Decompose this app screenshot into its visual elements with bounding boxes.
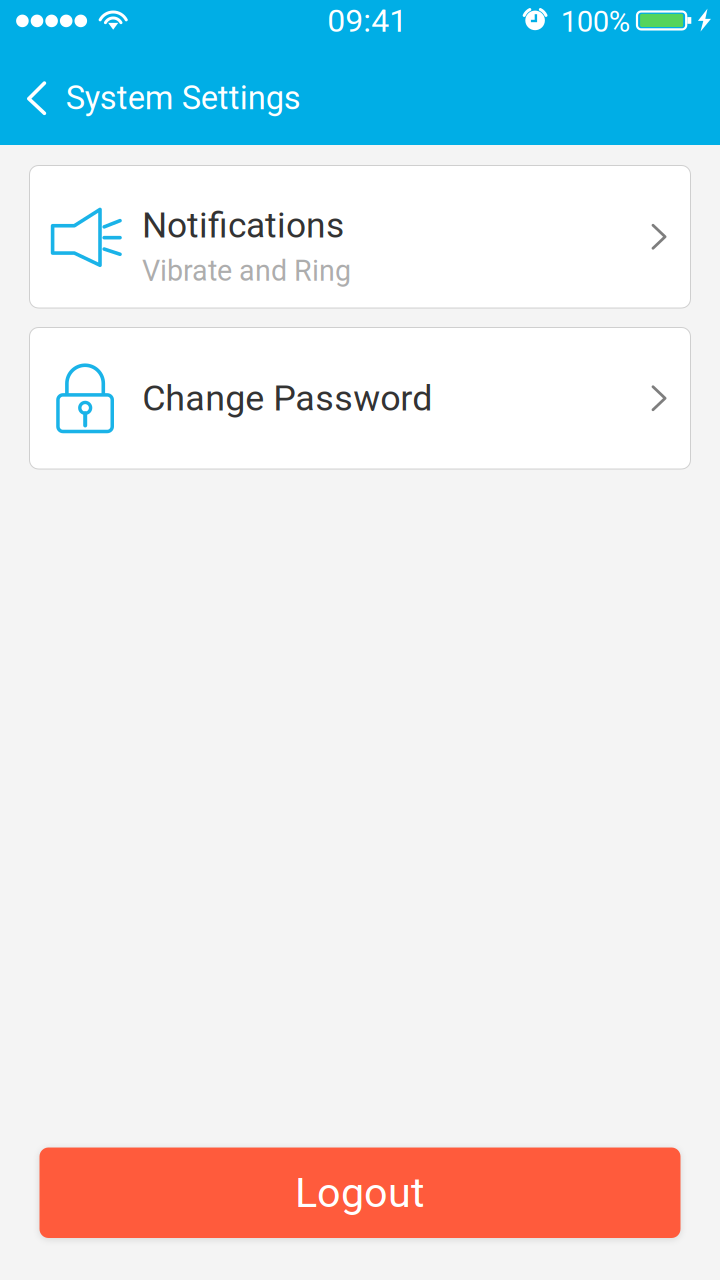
staticText: Notifications xyxy=(142,205,344,246)
staticText: System Settings xyxy=(66,79,301,117)
staticText: Vibrate and Ring xyxy=(142,254,351,288)
button[interactable]: Change Password xyxy=(29,327,690,469)
button[interactable]: Back: System Settings xyxy=(0,70,720,128)
staticText: Logout xyxy=(295,1168,425,1217)
staticText: 09:41 xyxy=(327,2,407,39)
staticText: 100% xyxy=(561,4,630,39)
button[interactable]: Logout xyxy=(39,1147,680,1238)
staticText: Change Password xyxy=(142,377,432,419)
button[interactable]: Notifications xyxy=(29,165,690,308)
